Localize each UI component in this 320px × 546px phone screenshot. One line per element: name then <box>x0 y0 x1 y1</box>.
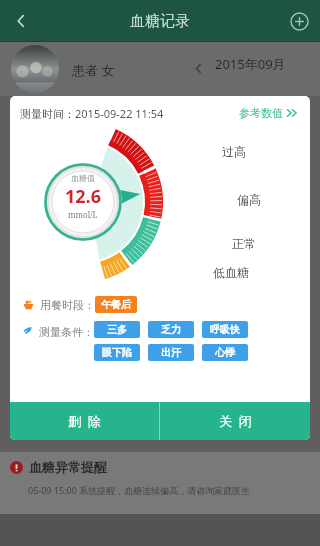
staticText: 患者 女 <box>72 61 115 79</box>
staticText: 午餐后 <box>101 298 131 311</box>
button[interactable]: 午餐后 <box>95 296 137 313</box>
staticText: 心悸 <box>215 346 235 359</box>
staticText: 低血糖 <box>213 265 249 280</box>
staticText: 血糖异常提醒 <box>29 459 107 475</box>
staticText: 三多 <box>107 323 127 336</box>
staticText: 测量时间：2015-09-22 11:54 <box>20 106 164 121</box>
staticText: 参考数值 <box>239 106 283 120</box>
staticText: 过高 <box>222 144 246 159</box>
button[interactable]: Back <box>0 0 42 42</box>
staticText: 偏高 <box>237 192 261 207</box>
button[interactable]: Previous month <box>186 56 210 80</box>
staticText: 出汗 <box>161 346 181 359</box>
staticText: 05-09 15:00 系统提醒，血糖连续偏高，请咨询家庭医生 <box>28 484 251 496</box>
button[interactable]: Add record <box>278 0 320 42</box>
button[interactable]: 三多 <box>94 321 140 338</box>
button[interactable]: 关 闭 <box>160 402 310 440</box>
staticText: 删 除 <box>68 412 101 430</box>
button[interactable]: 心悸 <box>202 344 248 361</box>
staticText: 12.6 <box>65 184 101 209</box>
staticText: 关 闭 <box>219 412 252 430</box>
button[interactable]: 呼吸快 <box>202 321 248 338</box>
staticText: 眼下陷 <box>102 346 132 359</box>
button[interactable]: 乏力 <box>148 321 194 338</box>
staticText: 用餐时段： <box>40 298 95 312</box>
staticText: 测量条件： <box>39 325 94 339</box>
staticText: 正常 <box>232 236 256 251</box>
staticText: mmol/L <box>68 209 98 220</box>
button[interactable]: 出汗 <box>148 344 194 361</box>
button[interactable]: Patient avatar <box>11 45 59 93</box>
button[interactable]: 眼下陷 <box>94 344 140 361</box>
staticText: 乏力 <box>161 323 181 336</box>
staticText: 呼吸快 <box>210 323 240 336</box>
button[interactable]: 2015年09月 <box>215 55 286 73</box>
staticText: 血糖记录 <box>130 12 190 31</box>
button[interactable]: 删 除 <box>10 402 159 440</box>
staticText: 血糖值 <box>71 173 95 183</box>
button[interactable]: 参考数值 <box>237 102 302 124</box>
staticText: 2015年09月 <box>215 55 286 73</box>
